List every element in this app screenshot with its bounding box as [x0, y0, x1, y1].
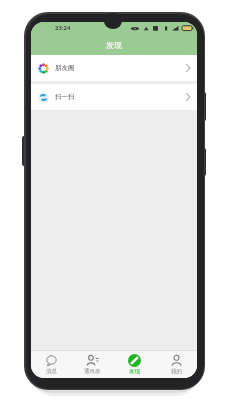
staticText: 发现 — [129, 368, 140, 375]
button[interactable]: 我的 — [155, 351, 197, 378]
button[interactable]: 消息 — [31, 351, 72, 378]
staticText: 通讯录 — [84, 368, 101, 375]
staticText: 我的 — [171, 368, 182, 375]
staticText: 消息 — [46, 368, 57, 375]
staticText: 23:24 — [55, 24, 71, 32]
staticText: 扫一扫 — [55, 93, 75, 101]
button[interactable]: 朋友圈 — [31, 55, 197, 81]
button[interactable]: 通讯录 — [72, 351, 113, 378]
staticText: 发现 — [106, 40, 122, 50]
button[interactable]: 发现 — [113, 351, 155, 378]
button[interactable]: 扫一扫 — [31, 84, 197, 110]
staticText: 朋友圈 — [55, 64, 75, 72]
